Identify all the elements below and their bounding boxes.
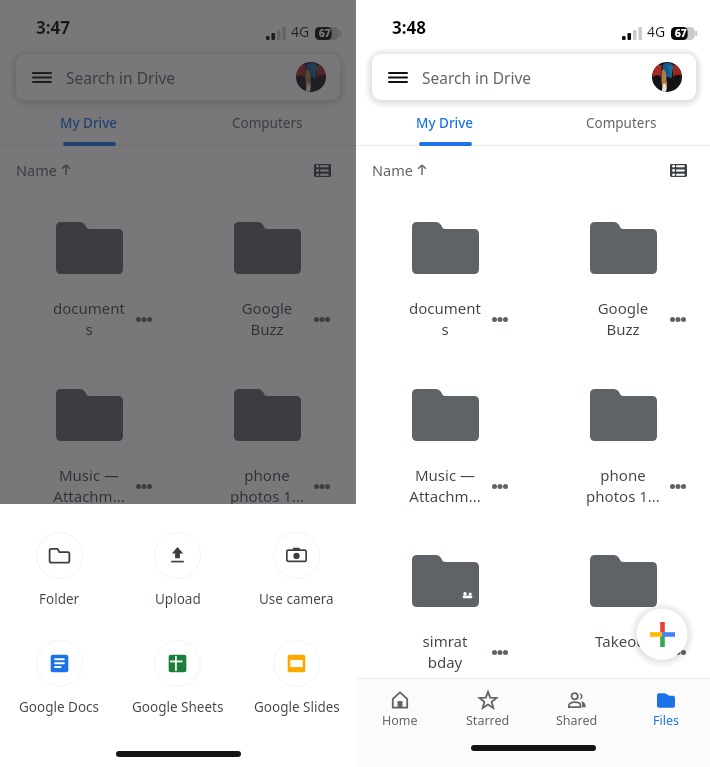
staticText: phone photos 1... — [534, 465, 710, 507]
button[interactable]: Create new — [629, 601, 695, 667]
button[interactable]: simrat bday — [0, 535, 178, 685]
button[interactable]: Switch to list view — [308, 156, 336, 184]
button[interactable]: document s — [356, 202, 534, 352]
button[interactable]: Account — [652, 62, 682, 92]
button[interactable]: My Drive — [356, 104, 533, 146]
staticText: Upload — [155, 590, 201, 608]
button[interactable]: document s — [0, 202, 178, 352]
button[interactable]: Files — [621, 679, 710, 736]
staticText: Folder — [39, 590, 80, 608]
staticText: phone photos 1... — [178, 465, 356, 507]
staticText: Music — Attachm... — [356, 465, 534, 507]
staticText: Google Buzz — [178, 298, 356, 340]
button[interactable]: Starred — [444, 679, 532, 736]
button[interactable]: More options for simrat bday — [486, 638, 514, 666]
button[interactable]: Folder — [0, 532, 118, 608]
staticText: document s — [0, 298, 178, 340]
button[interactable]: More options for Music — Attachm... — [130, 472, 158, 500]
staticText: My Drive — [60, 114, 118, 132]
staticText: Name — [16, 160, 57, 180]
staticText: 67 — [319, 26, 331, 40]
button[interactable]: More options for Music — Attachm... — [486, 472, 514, 500]
staticText: 67 — [675, 26, 687, 40]
button[interactable]: Search in Drive — [16, 54, 340, 100]
button[interactable]: Google Buzz — [178, 202, 356, 352]
staticText: simrat bday — [0, 631, 178, 673]
button[interactable]: Google Sheets — [118, 640, 237, 716]
button[interactable]: More options for document s — [130, 305, 158, 333]
button[interactable]: More options for Google Buzz — [308, 305, 336, 333]
button[interactable]: Use camera — [237, 532, 356, 608]
button[interactable]: More options for document s — [486, 305, 514, 333]
button[interactable]: Music — Attachm... — [0, 369, 178, 519]
button[interactable]: Google Buzz — [534, 202, 710, 352]
staticText: Use camera — [259, 590, 334, 608]
button[interactable]: Upload — [118, 532, 237, 608]
button[interactable]: Starred — [89, 679, 178, 736]
button[interactable]: Google Slides — [237, 640, 356, 716]
staticText: 4G — [291, 22, 310, 41]
staticText: Computers — [586, 114, 657, 132]
staticText: Home — [382, 712, 418, 729]
button[interactable]: Takeout — [178, 535, 356, 685]
staticText: Google Buzz — [534, 298, 710, 340]
button[interactable]: Switch to list view — [664, 156, 692, 184]
button[interactable]: Home — [356, 679, 444, 736]
button[interactable]: More options for Takeout — [664, 638, 692, 666]
button[interactable]: Create new — [273, 601, 339, 667]
button[interactable]: Takeout — [534, 535, 710, 685]
button[interactable]: Account — [296, 62, 326, 92]
staticText: 4G — [647, 22, 666, 41]
staticText: Search in Drive — [422, 67, 532, 88]
button[interactable]: Files — [267, 679, 356, 736]
button[interactable]: More options for phone photos 1... — [308, 472, 336, 500]
staticText: Google Docs — [19, 698, 100, 716]
button[interactable]: Search in Drive — [372, 54, 696, 100]
staticText: Starred — [466, 712, 510, 729]
button[interactable]: phone photos 1... — [178, 369, 356, 519]
staticText: 3:47 — [36, 16, 70, 39]
button[interactable]: Google Docs — [0, 640, 118, 716]
staticText: Shared — [556, 712, 598, 729]
staticText: document s — [356, 298, 534, 340]
button[interactable]: Home — [0, 679, 89, 736]
button[interactable]: More options for phone photos 1... — [664, 472, 692, 500]
staticText: Home — [27, 712, 63, 729]
button[interactable]: More options for Google Buzz — [664, 305, 692, 333]
staticText: 3:48 — [392, 16, 426, 39]
button[interactable]: Name — [16, 160, 72, 180]
staticText: Name — [372, 160, 413, 180]
button[interactable]: phone photos 1... — [534, 369, 710, 519]
button[interactable]: Computers — [533, 104, 710, 146]
button[interactable]: Shared — [178, 679, 267, 736]
button[interactable]: simrat bday — [356, 535, 534, 685]
staticText: My Drive — [416, 114, 474, 132]
button[interactable]: Name — [372, 160, 428, 180]
staticText: Google Slides — [254, 698, 340, 716]
button[interactable]: Shared — [532, 679, 621, 736]
staticText: Google Sheets — [132, 698, 224, 716]
button[interactable]: My Drive — [0, 104, 178, 146]
staticText: simrat bday — [356, 631, 534, 673]
staticText: Search in Drive — [66, 67, 176, 88]
staticText: Music — Attachm... — [0, 465, 178, 507]
button[interactable]: Music — Attachm... — [356, 369, 534, 519]
staticText: Computers — [232, 114, 303, 132]
staticText: Takeout — [534, 631, 710, 651]
button[interactable]: Computers — [178, 104, 356, 146]
staticText: Files — [653, 712, 679, 729]
